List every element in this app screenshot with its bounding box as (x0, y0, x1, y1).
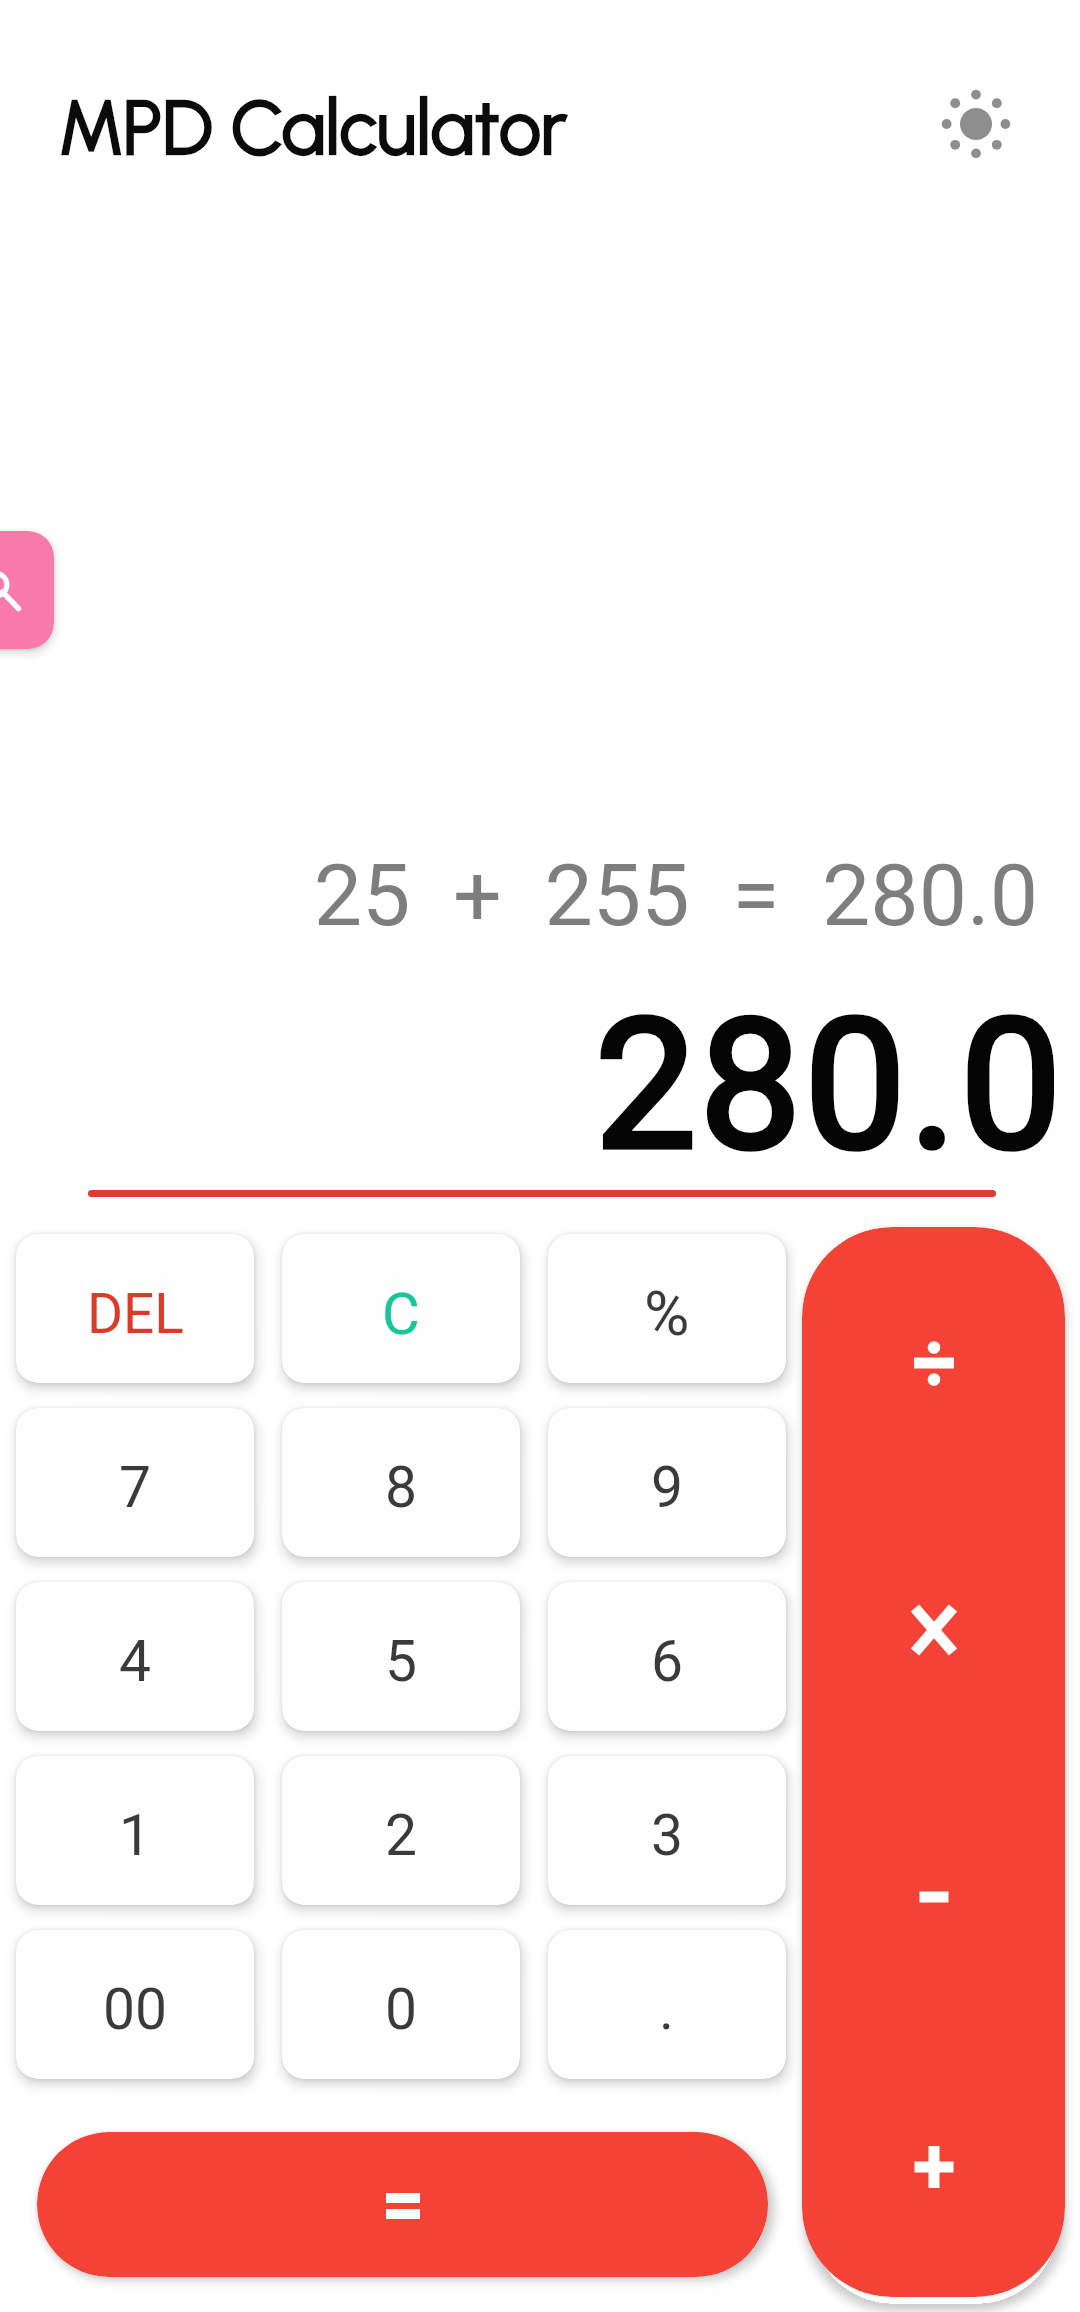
staticText: 0 (385, 1976, 418, 2043)
staticText: 25 + 255 = 280.0 (0, 845, 1038, 946)
staticText: % (644, 1277, 690, 1350)
button[interactable]: 4 (16, 1582, 254, 1731)
staticText: 6 (651, 1628, 684, 1695)
button[interactable]: 0 (282, 1930, 520, 2079)
button[interactable]: 00 (16, 1930, 254, 2079)
button[interactable]: 2 (282, 1756, 520, 1905)
button[interactable]: Subtract (802, 1763, 1065, 2030)
staticText: 8 (385, 1454, 418, 1521)
button[interactable]: % (548, 1234, 786, 1383)
button[interactable]: Equals (37, 2132, 768, 2277)
staticText: MPD Calculator (58, 83, 568, 173)
staticText: 7 (119, 1454, 152, 1521)
staticText: 280.0 (0, 980, 1065, 1191)
staticText: 4 (119, 1628, 152, 1695)
button[interactable]: Divide (802, 1229, 1065, 1496)
staticText: 3 (651, 1802, 684, 1869)
staticText: 1 (119, 1802, 152, 1869)
staticText: C (382, 1280, 420, 1348)
button[interactable]: 9 (548, 1408, 786, 1557)
staticText: 5 (385, 1628, 418, 1695)
staticText: 2 (385, 1802, 418, 1869)
button[interactable]: 8 (282, 1408, 520, 1557)
button[interactable]: Search (0, 531, 54, 649)
staticText: DEL (87, 1282, 184, 1346)
button[interactable]: Multiply (802, 1496, 1065, 1763)
button[interactable]: Toggle theme (926, 74, 1026, 174)
button[interactable]: 6 (548, 1582, 786, 1731)
staticText: 00 (103, 1976, 168, 2043)
button[interactable]: DEL (16, 1234, 254, 1383)
button[interactable]: 1 (16, 1756, 254, 1905)
button[interactable]: 7 (16, 1408, 254, 1557)
button[interactable]: 3 (548, 1756, 786, 1905)
staticText: 9 (651, 1454, 684, 1521)
staticText: . (659, 1976, 675, 2043)
button[interactable]: 5 (282, 1582, 520, 1731)
button[interactable]: Add (802, 2030, 1065, 2297)
button[interactable]: C (282, 1234, 520, 1383)
button[interactable]: . (548, 1930, 786, 2079)
